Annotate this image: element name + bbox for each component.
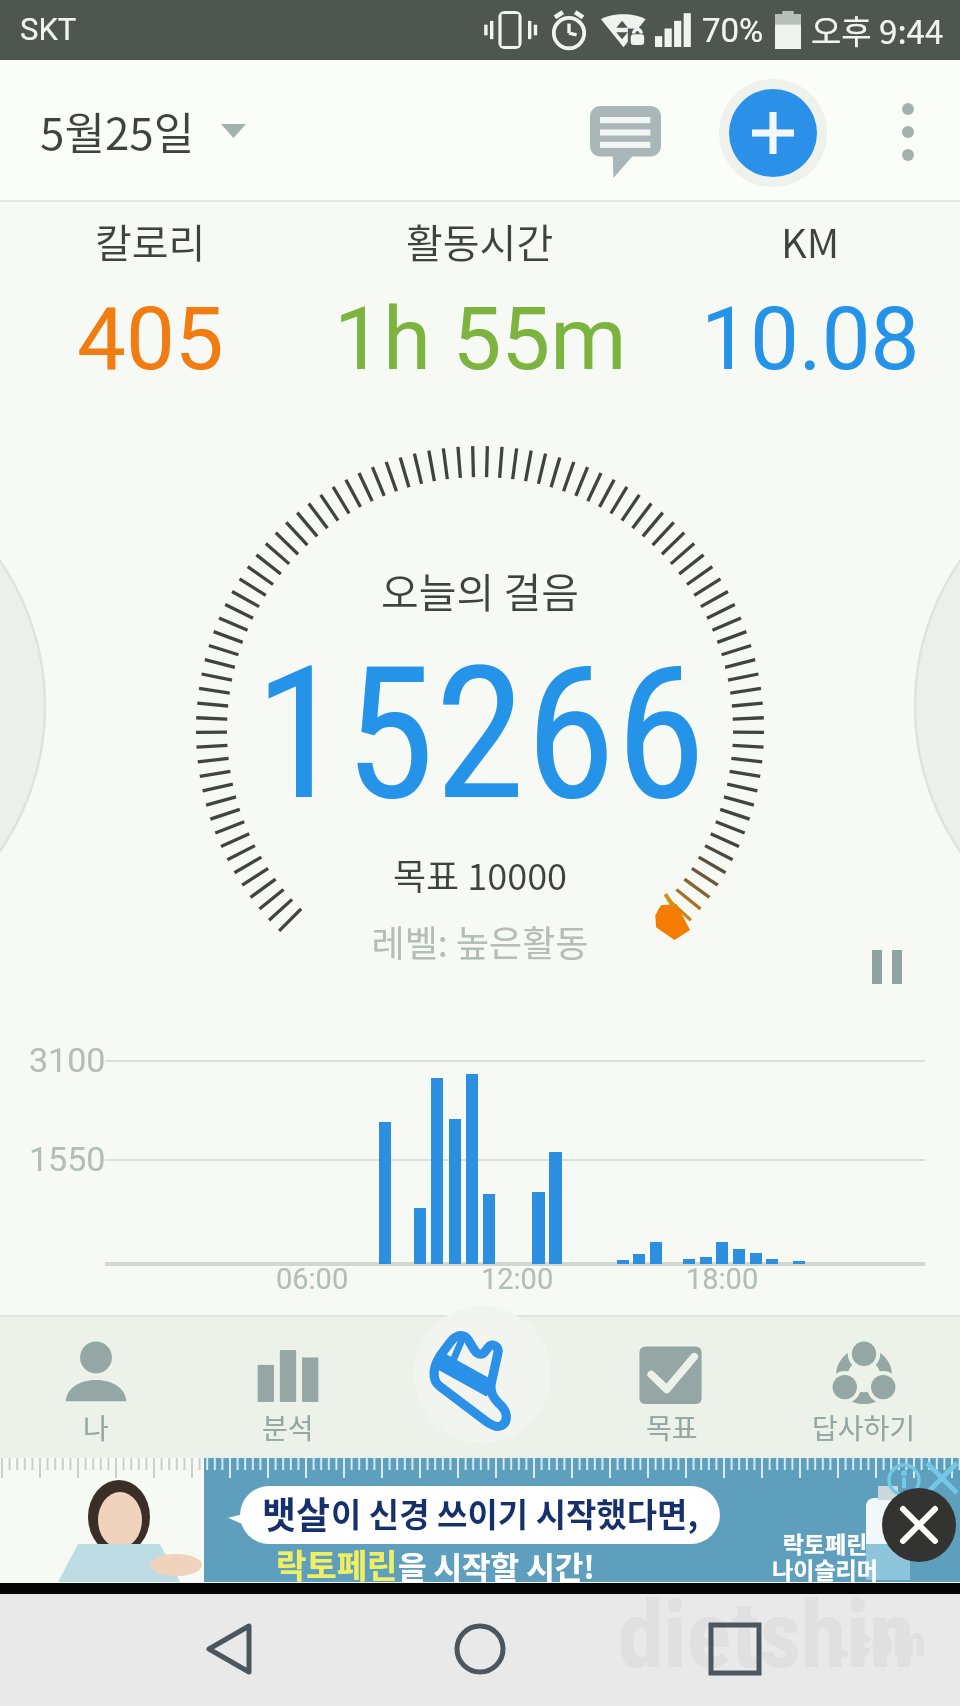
button[interactable]: 목표 <box>576 1318 768 1460</box>
staticText: 락토페린 나이슬리머 <box>772 1526 878 1585</box>
staticText: 락토페린 <box>276 1540 398 1588</box>
button[interactable]: 답사하기 <box>768 1318 960 1460</box>
staticText: 활동시간 <box>406 212 554 270</box>
staticText: SKT <box>20 11 77 47</box>
button[interactable]: Add <box>729 89 817 177</box>
button[interactable]: 분석 <box>192 1318 384 1460</box>
staticText: 나 <box>83 1407 109 1448</box>
button[interactable]: More options <box>862 86 954 178</box>
staticText: 을 시작할 시간! <box>398 1543 595 1588</box>
staticText: 18:00 <box>686 1262 759 1296</box>
staticText: 칼로리 <box>95 212 206 270</box>
button[interactable]: Ad choices <box>884 1460 924 1500</box>
button[interactable]: 나 <box>0 1318 192 1460</box>
staticText: 5월25일 <box>40 99 195 163</box>
staticText: 10.08 <box>701 288 920 390</box>
button[interactable]: Messages <box>570 87 680 197</box>
staticText: 70% <box>702 11 764 50</box>
button[interactable]: Hide ad <box>924 1460 960 1496</box>
staticText: 분석 <box>262 1407 314 1448</box>
button[interactable]: Pause <box>846 926 928 1008</box>
staticText: 405 <box>77 288 224 390</box>
staticText: 오후 9:44 <box>811 6 944 54</box>
button[interactable]: 칼로리 <box>0 202 300 390</box>
button[interactable]: Recents <box>693 1607 777 1691</box>
staticText: KM <box>781 212 840 270</box>
button[interactable]: Steps <box>414 1306 551 1443</box>
staticText: 목표 10000 <box>0 848 960 900</box>
staticText: 1h 55m <box>334 288 627 390</box>
staticText: 답사하기 <box>812 1407 916 1448</box>
button[interactable]: Back <box>187 1607 271 1691</box>
button[interactable]: 5월25일 <box>40 99 246 163</box>
staticText: 1550 <box>29 1139 106 1179</box>
staticText: 이 신경 쓰이기 시작했다면, <box>331 1489 699 1537</box>
button[interactable]: Close ad <box>882 1488 956 1562</box>
staticText: 오늘의 걸음 <box>0 560 960 619</box>
staticText: 15266 <box>0 627 960 841</box>
staticText: 뱃살 <box>262 1486 331 1540</box>
staticText: .com <box>838 1616 926 1668</box>
staticText: 3100 <box>29 1040 106 1080</box>
button[interactable]: KM <box>660 202 960 390</box>
button[interactable]: 활동시간 <box>330 202 630 390</box>
staticText: 목표 <box>646 1407 698 1448</box>
staticText: dietshin <box>618 1582 915 1690</box>
staticText: 06:00 <box>276 1262 349 1296</box>
button[interactable]: Home <box>438 1607 522 1691</box>
staticText: 레벨: 높은활동 <box>0 915 960 967</box>
staticText: 12:00 <box>481 1262 554 1296</box>
